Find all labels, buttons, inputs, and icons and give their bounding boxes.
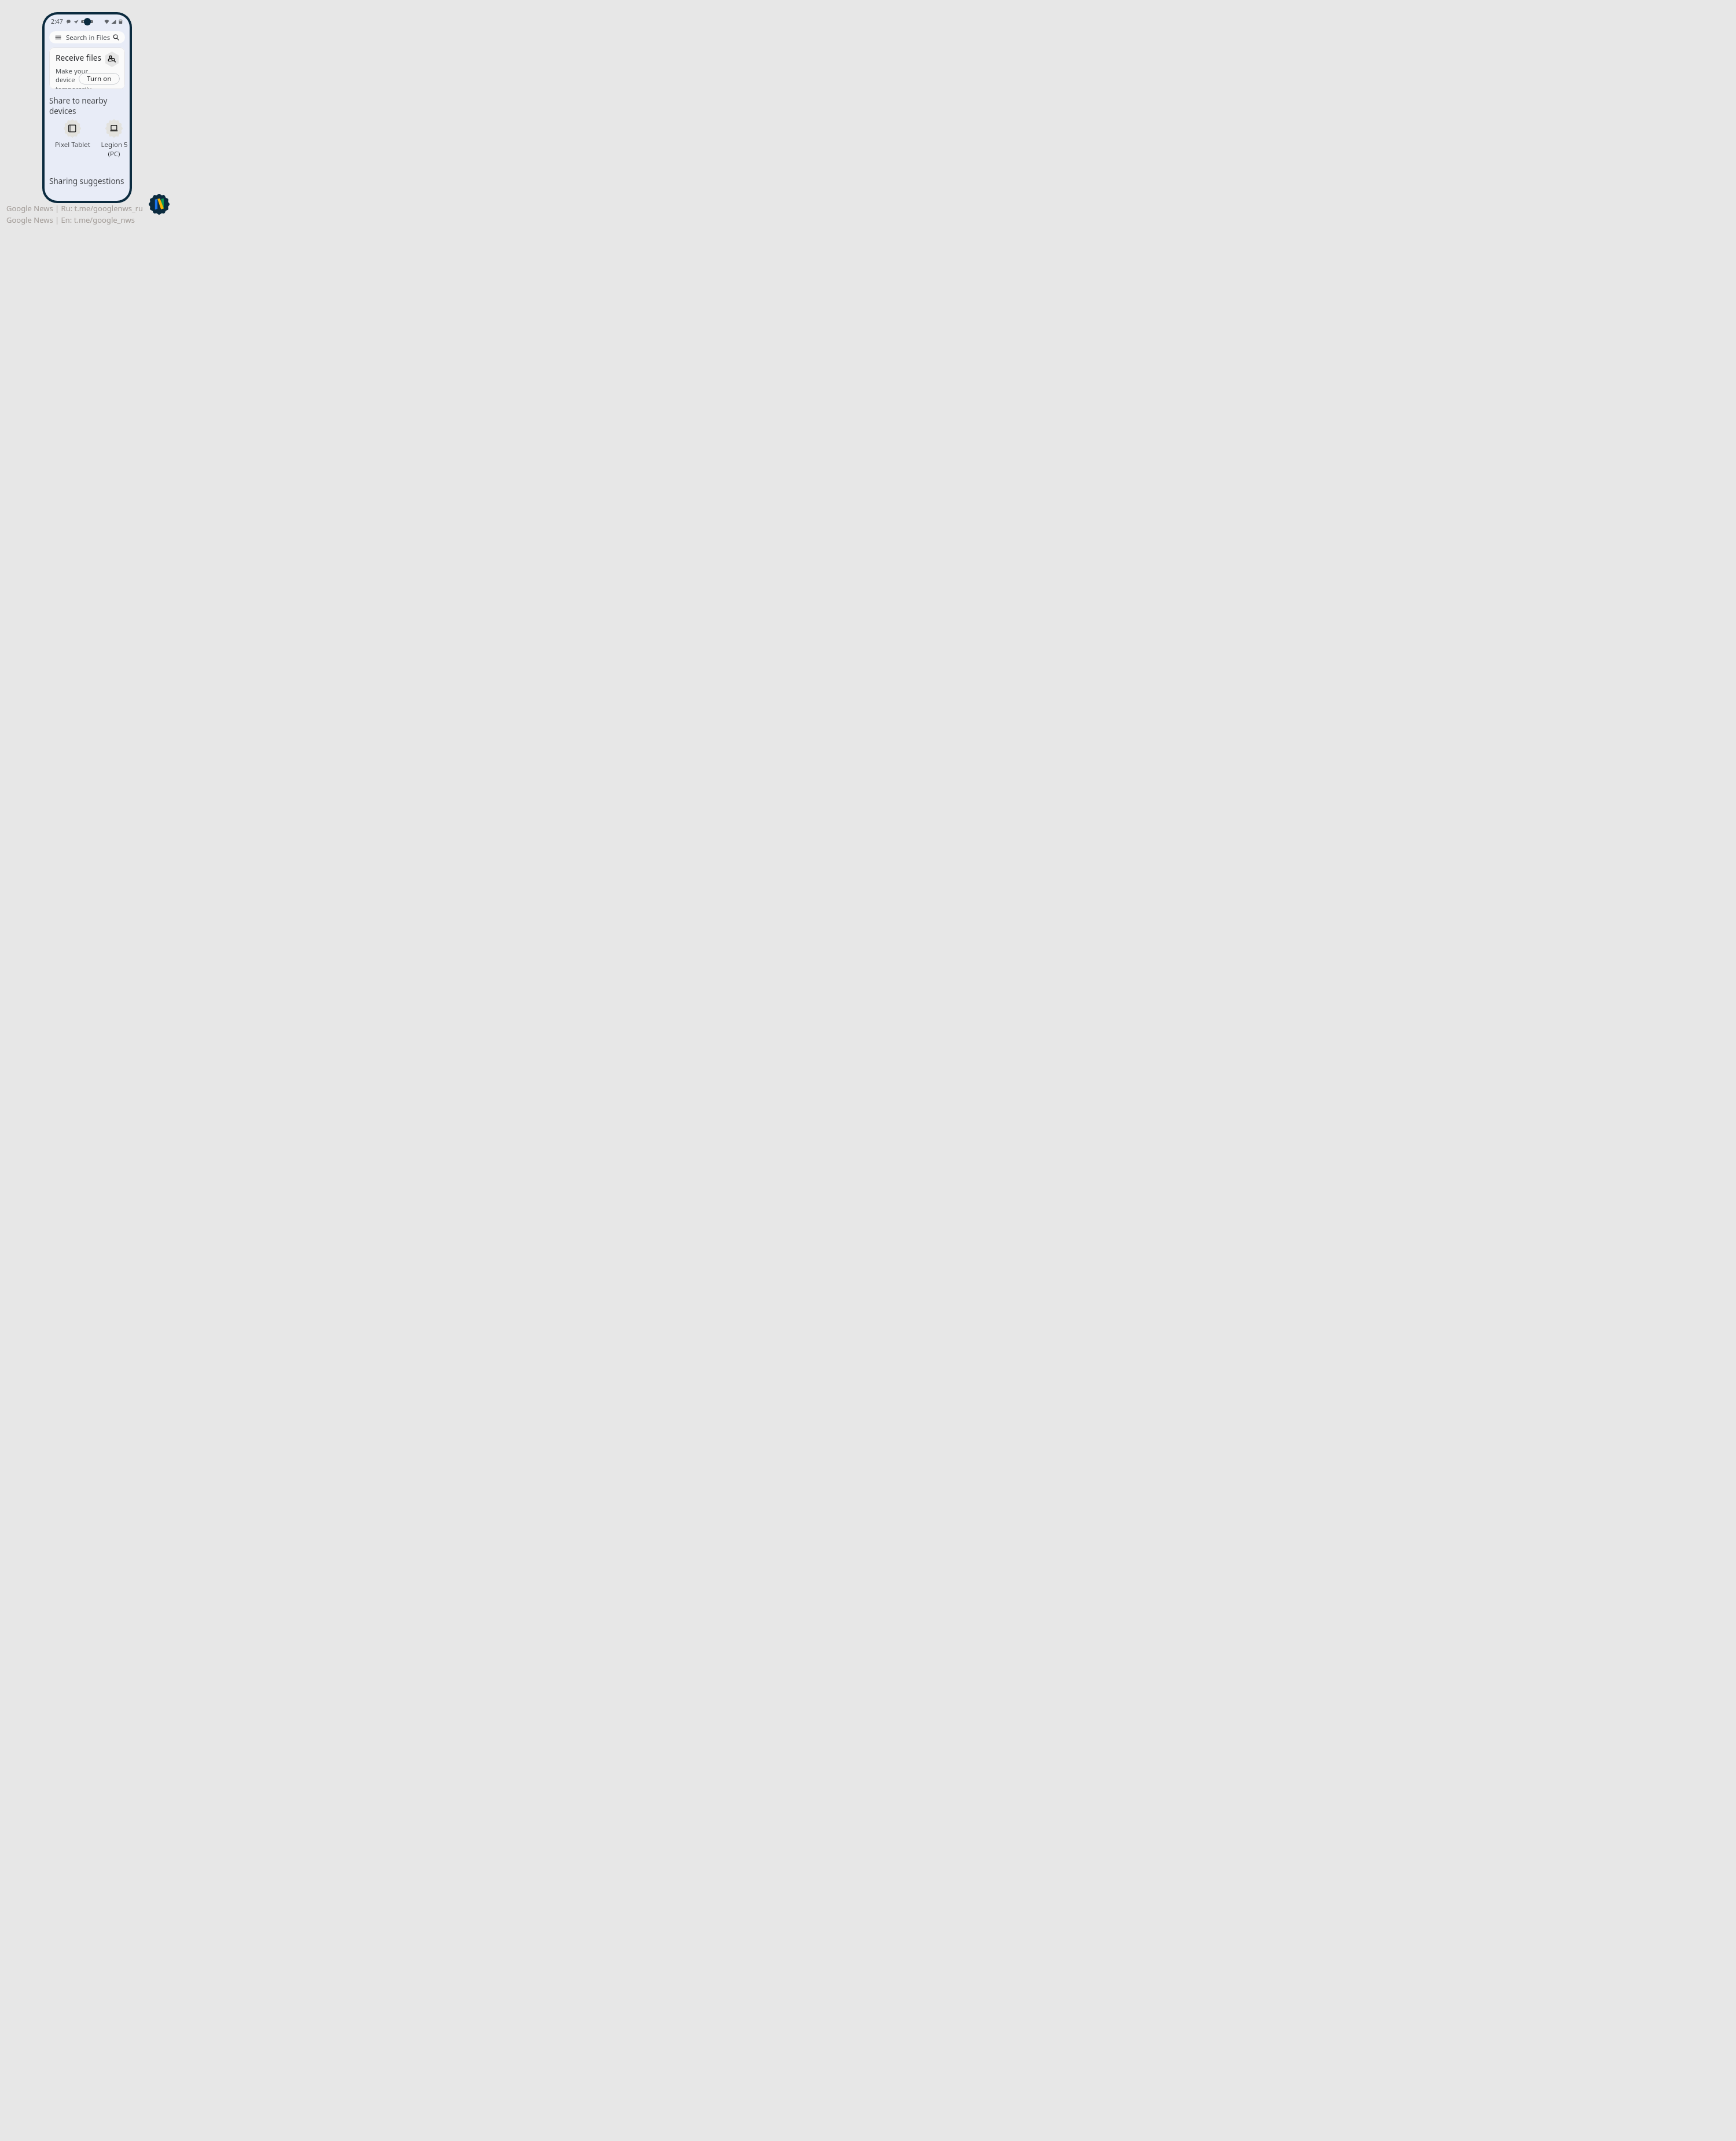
button[interactable]: Legion 5 — [98, 120, 130, 159]
staticText: 2:47 — [51, 17, 63, 25]
button[interactable]: Menu — [49, 31, 125, 43]
staticText: Receive files — [56, 53, 102, 63]
staticText: Google News | Ru: t.me/googlenws_ru — [6, 203, 144, 214]
staticText: Make your device temporarily visible to … — [56, 67, 101, 89]
button[interactable]: View all — [124, 161, 125, 201]
other: Search — [113, 34, 119, 41]
staticText: Share to nearby devices — [49, 95, 125, 116]
staticText: Turn on — [87, 74, 112, 83]
other: Menu — [55, 34, 61, 41]
staticText: Pixel Tablet — [55, 140, 90, 149]
button[interactable]: Receive files — [49, 47, 125, 89]
staticText: Search in Files — [66, 33, 111, 42]
button[interactable]: Pixel Tablet — [49, 120, 95, 149]
staticText: Legion 5 — [101, 140, 128, 149]
staticText: Google News | En: t.me/google_nws — [6, 215, 135, 225]
staticText: Sharing suggestions — [49, 176, 124, 186]
button[interactable]: Turn on — [79, 73, 120, 84]
staticText: (PC) — [108, 149, 120, 159]
